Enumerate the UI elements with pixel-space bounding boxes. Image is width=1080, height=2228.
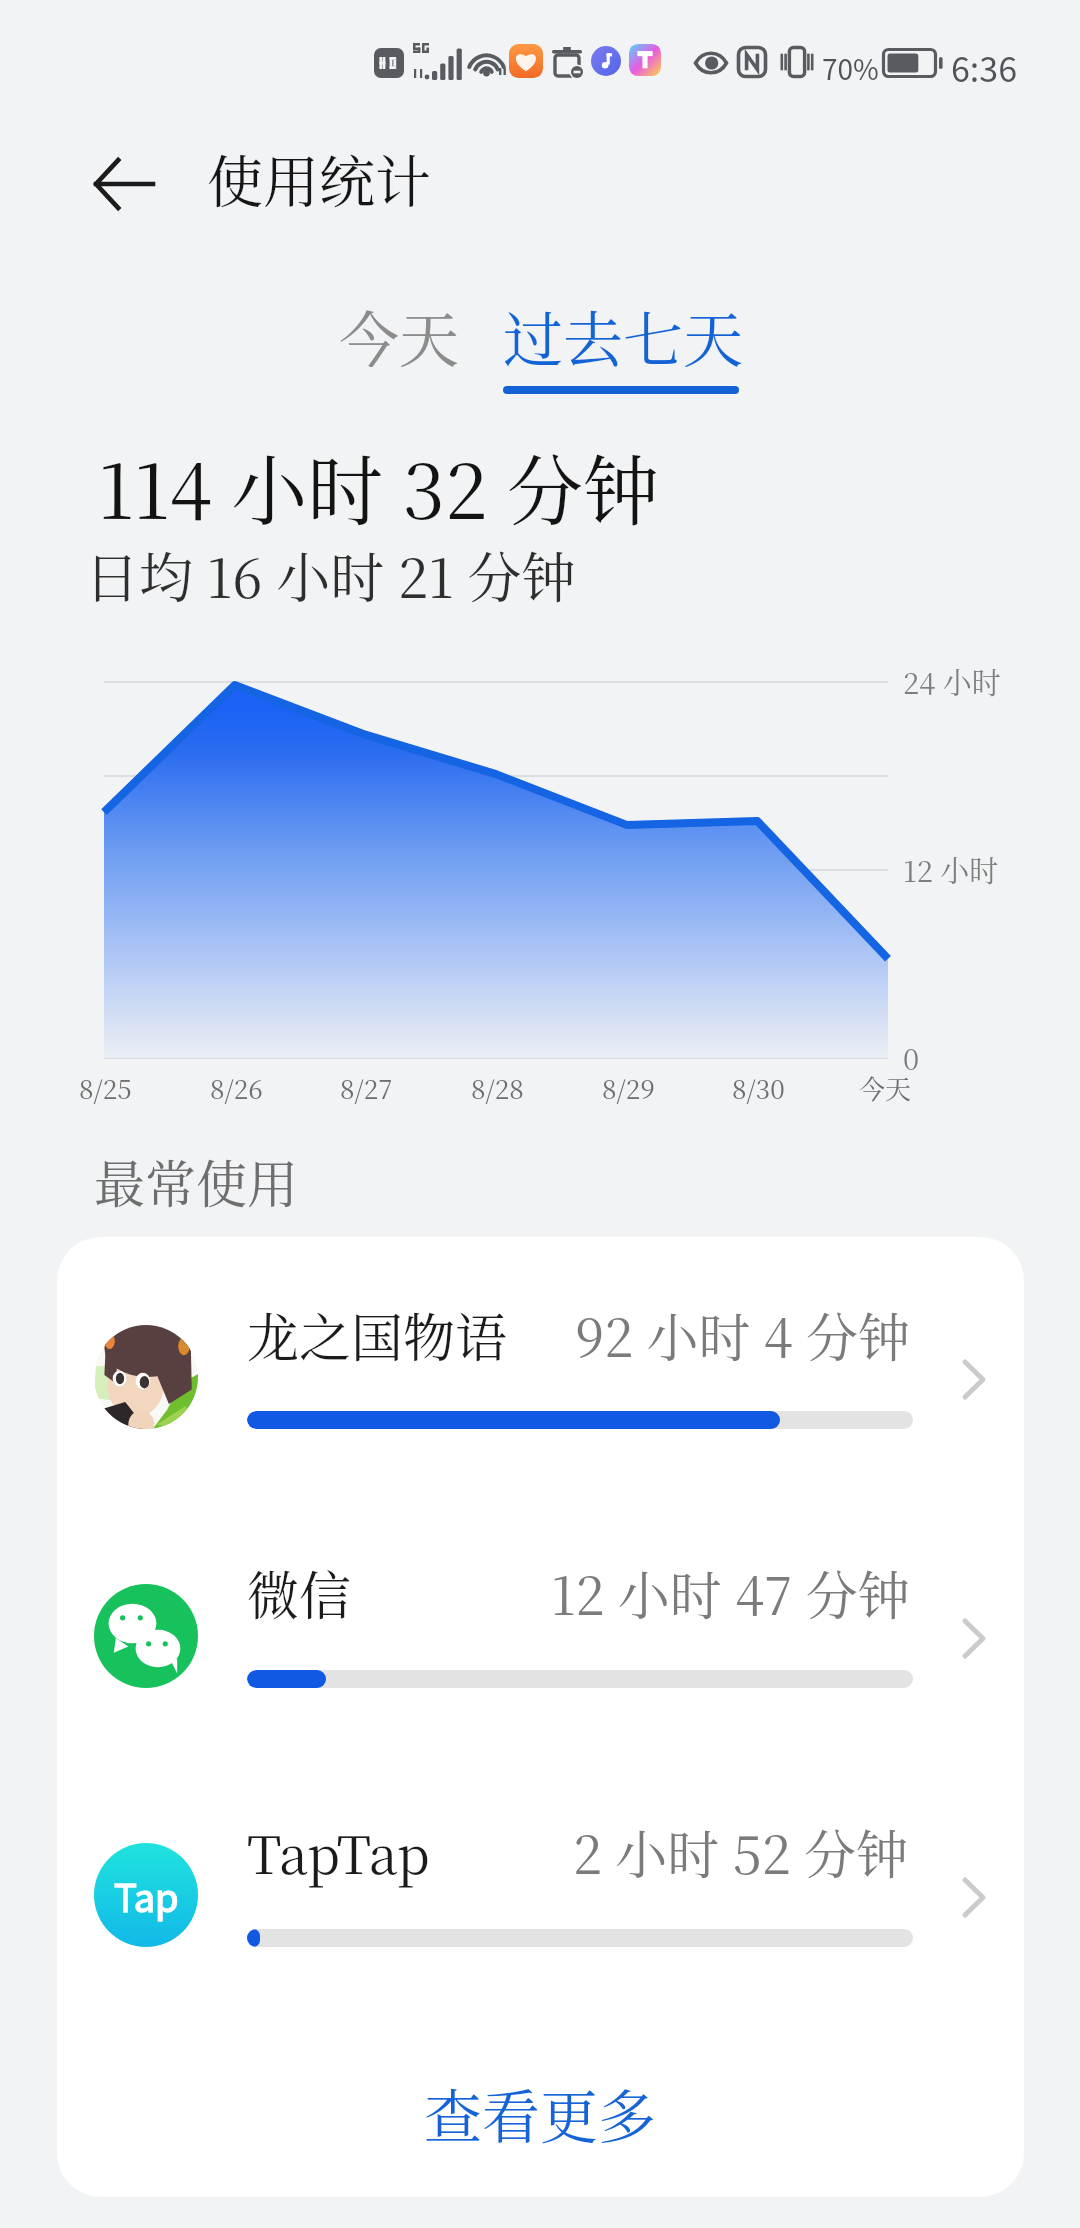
staticText: 8/29 (602, 1069, 655, 1106)
staticText: Tap (114, 1868, 179, 1923)
staticText: 70% (822, 48, 879, 89)
staticText: 查看更多 (424, 2071, 657, 2154)
staticText: 0 (903, 1037, 920, 1079)
button[interactable]: Tap (57, 1766, 1024, 1994)
button[interactable]: 龙之国物语 (57, 1249, 1024, 1477)
staticText: TapTap (247, 1814, 430, 1889)
staticText: 8/27 (340, 1069, 393, 1106)
staticText: 8/26 (210, 1069, 263, 1106)
staticText: 过去七天 (503, 293, 743, 379)
staticText: 龙之国物语 (247, 1297, 508, 1372)
staticText: 最常使用 (94, 1144, 299, 1217)
staticText: 24 小时 (903, 661, 1001, 703)
staticText: 8/30 (732, 1069, 785, 1106)
button[interactable]: 今天 (322, 280, 476, 392)
staticText: 微信 (247, 1555, 352, 1630)
button[interactable]: Back (66, 126, 182, 242)
staticText: 6:36 (951, 43, 1018, 92)
staticText: 114 小时 32 分钟 (98, 432, 659, 541)
staticText: 8/28 (471, 1069, 524, 1106)
staticText: 今天 (859, 1069, 912, 1106)
staticText: 使用统计 (207, 138, 431, 218)
staticText: 今天 (339, 293, 459, 379)
staticText: 8/25 (79, 1069, 132, 1106)
staticText: 92 小时 4 分钟 (575, 1297, 911, 1372)
staticText: 12 小时 47 分钟 (551, 1555, 910, 1630)
button[interactable]: 微信 (57, 1507, 1024, 1735)
staticText: 日均 16 小时 21 分钟 (85, 536, 576, 614)
button[interactable]: 过去七天 (487, 279, 755, 407)
staticText: 2 小时 52 分钟 (573, 1814, 908, 1889)
button[interactable]: 查看更多 (57, 2042, 1024, 2182)
staticText: 12 小时 (903, 849, 999, 891)
